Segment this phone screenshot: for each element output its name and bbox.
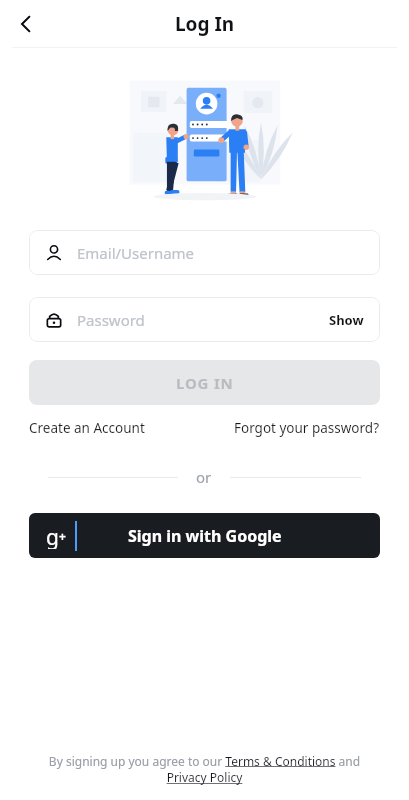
staticText: Sign in with Google bbox=[128, 525, 282, 547]
button[interactable]: Password bbox=[29, 297, 380, 342]
staticText: or bbox=[196, 467, 212, 487]
button[interactable]: g bbox=[29, 513, 380, 558]
staticText: Password bbox=[77, 310, 329, 330]
staticText: Email/Username bbox=[77, 243, 195, 263]
staticText: + bbox=[59, 528, 66, 544]
staticText: Create an Account bbox=[29, 419, 145, 437]
button[interactable]: Create an Account bbox=[29, 419, 145, 437]
staticText: LOG IN bbox=[176, 373, 234, 393]
button[interactable]: LOG IN bbox=[29, 360, 380, 405]
button[interactable]: Forgot your password? bbox=[234, 419, 380, 437]
staticText: g bbox=[46, 523, 59, 549]
staticText: By signing up you agree to our Terms & C… bbox=[28, 753, 381, 786]
staticText: Forgot your password? bbox=[234, 419, 380, 437]
button[interactable]: Back bbox=[6, 4, 46, 44]
staticText: Log In bbox=[175, 11, 235, 37]
staticText: Show bbox=[329, 311, 364, 329]
button[interactable]: Email/Username bbox=[29, 230, 380, 275]
button[interactable]: Show bbox=[329, 311, 364, 329]
